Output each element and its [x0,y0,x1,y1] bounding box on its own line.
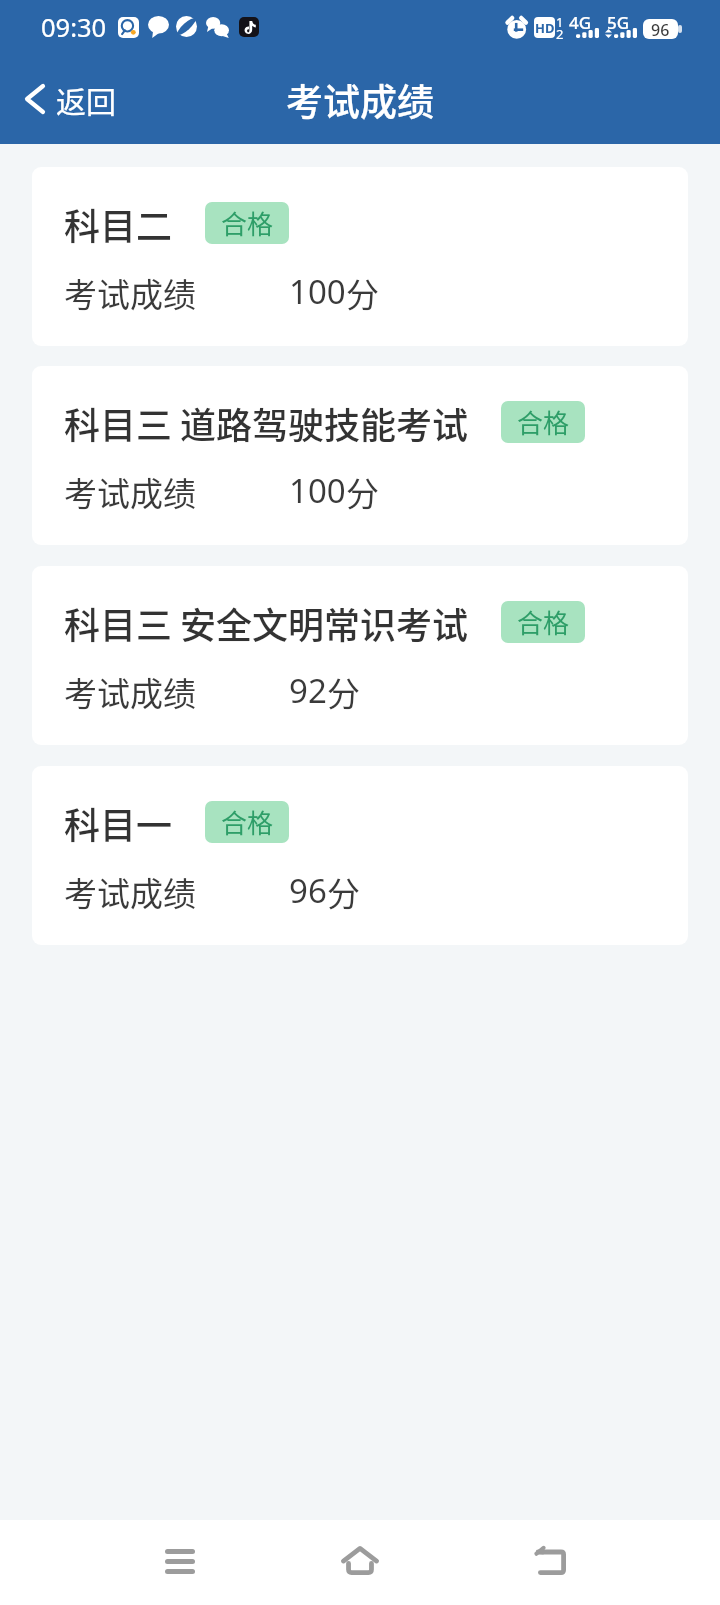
staticText: 科目一 [64,797,173,849]
staticText: 分 [346,269,379,317]
staticText: 09:30 [41,10,107,45]
staticText: 科目三 安全文明常识考试 [64,597,469,649]
staticText: 92 [289,668,327,713]
staticText: 科目二 [64,198,173,250]
staticText: 分 [327,668,360,716]
button[interactable]: Home [315,1520,405,1605]
staticText: 考试成绩 [286,73,434,127]
button[interactable]: Recent apps [135,1520,225,1605]
staticText: 考试成绩 [64,269,196,317]
staticText: 考试成绩 [64,468,196,516]
button[interactable]: 科目三 安全文明常识考试 [32,566,688,745]
staticText: 合格 [221,204,274,242]
staticText: 考试成绩 [64,668,196,716]
staticText: 2 [556,25,564,43]
staticText: 考试成绩 [64,868,196,916]
staticText: 分 [327,868,360,916]
staticText: 返回 [56,78,116,121]
staticText: 96 [289,868,327,913]
staticText: 合格 [517,603,570,641]
staticText: 合格 [221,803,274,841]
staticText: 100 [289,269,346,314]
button[interactable]: 科目一 [32,766,688,945]
staticText: 分 [346,468,379,516]
button[interactable]: 科目三 道路驾驶技能考试 [32,366,688,545]
button[interactable]: 科目二 [32,167,688,346]
staticText: HD [535,19,555,37]
staticText: 科目三 道路驾驶技能考试 [64,397,469,449]
staticText: 5G [607,11,630,34]
button[interactable]: 返回 [0,57,134,141]
staticText: 100 [289,468,346,513]
staticText: 1 [556,13,564,31]
button[interactable]: Back [505,1520,595,1605]
staticText: 合格 [517,403,570,441]
staticText: 96 [651,19,670,39]
staticText: 4G [569,11,592,34]
